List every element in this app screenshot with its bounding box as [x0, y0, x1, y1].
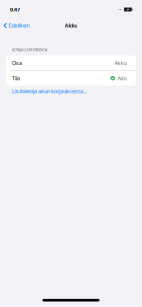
staticText: Lisätietoja akun korjauksesta... [12, 88, 86, 95]
staticText: Akku [65, 22, 77, 29]
staticText: Akku [114, 59, 126, 66]
staticText: Edellinen [8, 22, 29, 29]
staticText: Tila [12, 75, 20, 82]
staticText: Osa [12, 59, 22, 66]
staticText: Aito [117, 75, 126, 82]
staticText: KORJAUSMERKINTÄ [12, 47, 48, 52]
button[interactable]: Edellinen [0, 19, 33, 32]
staticText: 0.47 [10, 6, 20, 13]
button[interactable]: Lisätietoja akun korjauksesta... [0, 86, 142, 95]
